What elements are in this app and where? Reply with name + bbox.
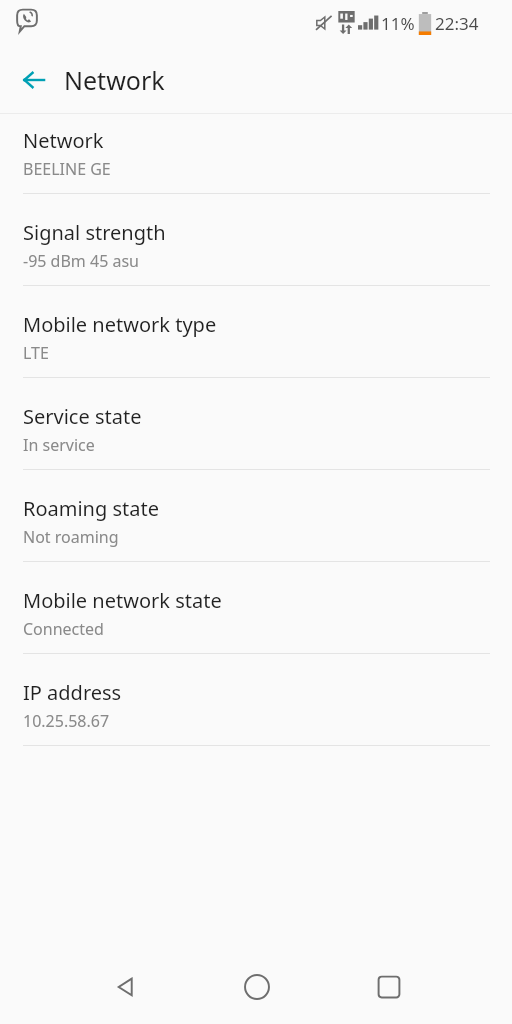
staticText: In service xyxy=(23,434,95,456)
staticText: IP address xyxy=(23,679,122,706)
button[interactable]: Home xyxy=(227,957,287,1017)
button[interactable]: Service state xyxy=(0,390,512,482)
staticText: Roaming state xyxy=(23,495,159,522)
staticText: Connected xyxy=(23,618,104,640)
button[interactable]: Recent apps xyxy=(359,957,419,1017)
button[interactable]: Signal strength xyxy=(0,206,512,298)
staticText: 10.25.58.67 xyxy=(23,710,110,732)
button[interactable]: Network xyxy=(0,114,512,206)
staticText: -95 dBm 45 asu xyxy=(23,250,139,272)
staticText: Service state xyxy=(23,403,142,430)
staticText: Mobile network type xyxy=(23,311,217,338)
button[interactable]: Roaming state xyxy=(0,482,512,574)
staticText: Network xyxy=(23,127,104,154)
staticText: 11% xyxy=(381,12,415,35)
staticText: Signal strength xyxy=(23,219,166,246)
staticText: LTE xyxy=(23,342,49,364)
button[interactable]: Mobile network state xyxy=(0,574,512,666)
button[interactable]: IP address xyxy=(0,666,512,758)
staticText: Not roaming xyxy=(23,526,119,548)
other: Viber notification xyxy=(14,7,40,33)
staticText: Network xyxy=(64,63,165,97)
button[interactable]: Mobile network type xyxy=(0,298,512,390)
button[interactable]: Back xyxy=(96,957,156,1017)
staticText: 22:34 xyxy=(435,12,479,35)
button[interactable]: Back xyxy=(10,56,58,104)
staticText: BEELINE GE xyxy=(23,158,111,180)
staticText: Mobile network state xyxy=(23,587,222,614)
